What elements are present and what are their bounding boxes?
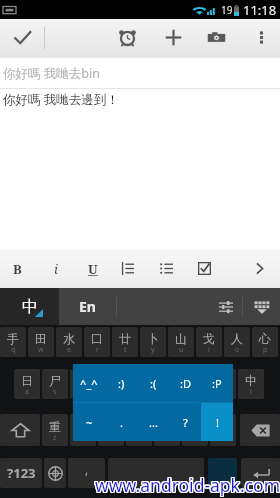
- button[interactable]: Delete: [240, 414, 280, 446]
- staticText: 大: [217, 373, 229, 388]
- staticText: ,: [85, 461, 89, 477]
- staticText: 心: [259, 331, 271, 346]
- button[interactable]: Shift: [0, 414, 40, 446]
- button[interactable]: 中: [238, 369, 264, 399]
- button[interactable]: 卜: [140, 327, 166, 357]
- staticText: 廿: [119, 331, 131, 346]
- button[interactable]: [108, 458, 204, 488]
- staticText: u: [179, 345, 184, 355]
- staticText: www.android-apk.com: [96, 474, 280, 498]
- button[interactable]: 重: [42, 414, 68, 446]
- button[interactable]: 水: [56, 327, 82, 357]
- button[interactable]: 火: [98, 369, 124, 399]
- button[interactable]: 心: [252, 327, 278, 357]
- button[interactable]: ...: [137, 403, 169, 441]
- button[interactable]: 中: [0, 288, 59, 325]
- staticText: U: [88, 260, 98, 278]
- button[interactable]: En: [59, 288, 116, 325]
- button[interactable]: 大: [210, 369, 236, 399]
- staticText: t: [124, 345, 127, 355]
- button[interactable]: ,: [68, 458, 105, 488]
- staticText: ~: [86, 415, 93, 430]
- staticText: !: [216, 415, 219, 430]
- button[interactable]: 人: [224, 327, 250, 357]
- staticText: ?: [183, 415, 188, 430]
- staticText: c: [109, 433, 113, 443]
- button[interactable]: Numbered list: [108, 249, 146, 288]
- staticText: q: [11, 345, 16, 355]
- button[interactable]: 日: [14, 369, 40, 399]
- button[interactable]: Input settings: [209, 288, 242, 325]
- button[interactable]: 月: [154, 414, 180, 446]
- button[interactable]: :(: [137, 364, 169, 402]
- button[interactable]: Camera: [197, 19, 235, 56]
- button[interactable]: 難: [70, 414, 96, 446]
- button[interactable]: 戈: [196, 327, 222, 357]
- button[interactable]: Add: [154, 19, 192, 56]
- button[interactable]: Bulleted list: [147, 249, 185, 288]
- staticText: 手: [7, 331, 19, 346]
- button[interactable]: 十: [182, 369, 208, 399]
- staticText: 日: [21, 373, 33, 388]
- staticText: En: [79, 297, 96, 316]
- staticText: 人: [231, 331, 243, 346]
- staticText: 口: [91, 331, 103, 346]
- button[interactable]: :D: [169, 364, 201, 402]
- staticText: :D: [180, 376, 191, 391]
- button[interactable]: B: [0, 249, 36, 288]
- staticText: ?123: [7, 464, 36, 482]
- button[interactable]: More formatting: [240, 249, 278, 288]
- button[interactable]: 竹: [154, 369, 180, 399]
- staticText: www.android-apk.com: [95, 474, 280, 498]
- button[interactable]: 女: [126, 414, 152, 446]
- button[interactable]: 山: [168, 327, 194, 357]
- staticText: www.android-apk.com: [95, 472, 280, 496]
- button[interactable]: Done: [0, 19, 44, 56]
- button[interactable]: i: [37, 249, 75, 288]
- button[interactable]: .: [105, 403, 137, 441]
- button[interactable]: 田: [28, 327, 54, 357]
- staticText: 11:18: [243, 1, 277, 19]
- button[interactable]: 金: [98, 414, 124, 446]
- button[interactable]: :): [105, 364, 137, 402]
- staticText: 卜: [147, 331, 159, 346]
- button[interactable]: 廿: [112, 327, 138, 357]
- button[interactable]: 口: [84, 327, 110, 357]
- staticText: a: [25, 387, 29, 397]
- staticText: 難: [77, 419, 89, 434]
- button[interactable]: 尸: [42, 369, 68, 399]
- staticText: i: [208, 345, 210, 355]
- button[interactable]: More options: [242, 19, 280, 56]
- button[interactable]: 一: [210, 414, 236, 446]
- button[interactable]: 弓: [182, 414, 208, 446]
- button[interactable]: 木: [70, 369, 96, 399]
- button[interactable]: ~: [73, 403, 105, 441]
- button[interactable]: 手: [0, 327, 26, 357]
- staticText: s: [53, 387, 57, 397]
- staticText: ...: [149, 415, 158, 430]
- button[interactable]: Alarm: [108, 19, 146, 56]
- staticText: m: [220, 433, 227, 443]
- button[interactable]: Hide keyboard: [243, 288, 280, 325]
- button[interactable]: ?: [169, 403, 201, 441]
- staticText: y: [151, 345, 155, 355]
- staticText: 山: [175, 331, 187, 346]
- button[interactable]: 土: [126, 369, 152, 399]
- button[interactable]: U: [74, 249, 112, 288]
- button[interactable]: Change language: [44, 458, 66, 488]
- button[interactable]: ?123: [0, 458, 42, 488]
- button[interactable]: :P: [201, 364, 233, 402]
- button[interactable]: Emoticons: [208, 458, 237, 488]
- button[interactable]: Checklist: [185, 249, 223, 288]
- button[interactable]: !: [201, 403, 233, 441]
- button[interactable]: ^_^: [73, 364, 105, 402]
- button[interactable]: Enter: [241, 458, 280, 488]
